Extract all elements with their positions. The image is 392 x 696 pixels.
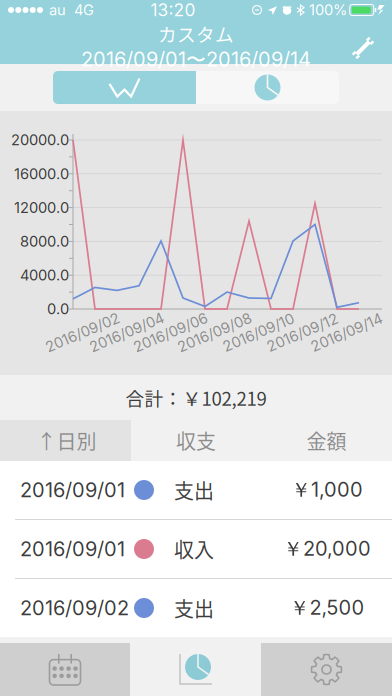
staticText: 2016/09/10 bbox=[220, 324, 296, 341]
button[interactable]: Pie chart bbox=[196, 71, 339, 104]
staticText: 支出 bbox=[174, 475, 214, 504]
staticText: 8000.0 bbox=[20, 232, 69, 250]
staticText: ￥2,500 bbox=[289, 595, 364, 621]
staticText: 2016/09/08 bbox=[175, 324, 254, 341]
staticText: 2016/09/04 bbox=[87, 324, 166, 341]
staticText: 2016/09/01〜2016/09/14 bbox=[81, 47, 311, 72]
staticText: 4G bbox=[74, 1, 94, 19]
staticText: 0.0 bbox=[47, 300, 69, 318]
staticText: 収入 bbox=[174, 534, 214, 563]
button[interactable]: Settings bbox=[351, 24, 392, 60]
staticText: 16000.0 bbox=[14, 165, 69, 183]
staticText: ￥1,000 bbox=[291, 477, 363, 503]
button[interactable]: Charts bbox=[130, 643, 261, 696]
staticText: カスタム bbox=[158, 20, 234, 47]
staticText: 収支 bbox=[176, 426, 216, 455]
button[interactable]: 2016/09/01 bbox=[0, 520, 392, 578]
staticText: 金額 bbox=[306, 426, 346, 455]
staticText: 2016/09/02 bbox=[20, 596, 129, 620]
button[interactable]: Line chart bbox=[53, 71, 196, 104]
staticText: 2016/09/06 bbox=[131, 324, 210, 341]
staticText: 4000.0 bbox=[20, 266, 69, 284]
button[interactable]: Calendar bbox=[0, 643, 130, 696]
staticText: 2016/09/14 bbox=[308, 324, 384, 341]
button[interactable]: 2016/09/01 bbox=[0, 461, 392, 519]
staticText: 2016/09/01 bbox=[20, 478, 125, 502]
staticText: 12000.0 bbox=[14, 199, 69, 216]
staticText: 13:20 bbox=[150, 0, 195, 20]
button[interactable]: 収支 bbox=[131, 420, 261, 461]
staticText: 2016/09/02 bbox=[43, 324, 122, 341]
staticText: 支出 bbox=[174, 593, 214, 622]
staticText: ↑日別 bbox=[36, 426, 96, 455]
button[interactable]: Settings bbox=[261, 643, 392, 696]
button[interactable]: 金額 bbox=[261, 420, 392, 461]
button[interactable]: 2016/09/02 bbox=[0, 579, 392, 637]
staticText: 2016/09/01 bbox=[20, 537, 125, 561]
button[interactable]: ↑日別 bbox=[0, 420, 131, 461]
staticText: au bbox=[49, 1, 66, 19]
staticText: 合計：￥102,219 bbox=[125, 384, 266, 411]
staticText: ￥20,000 bbox=[283, 536, 371, 562]
staticText: 2016/09/12 bbox=[264, 324, 340, 341]
staticText: 20000.0 bbox=[11, 131, 69, 149]
staticText: 100% bbox=[309, 1, 347, 19]
